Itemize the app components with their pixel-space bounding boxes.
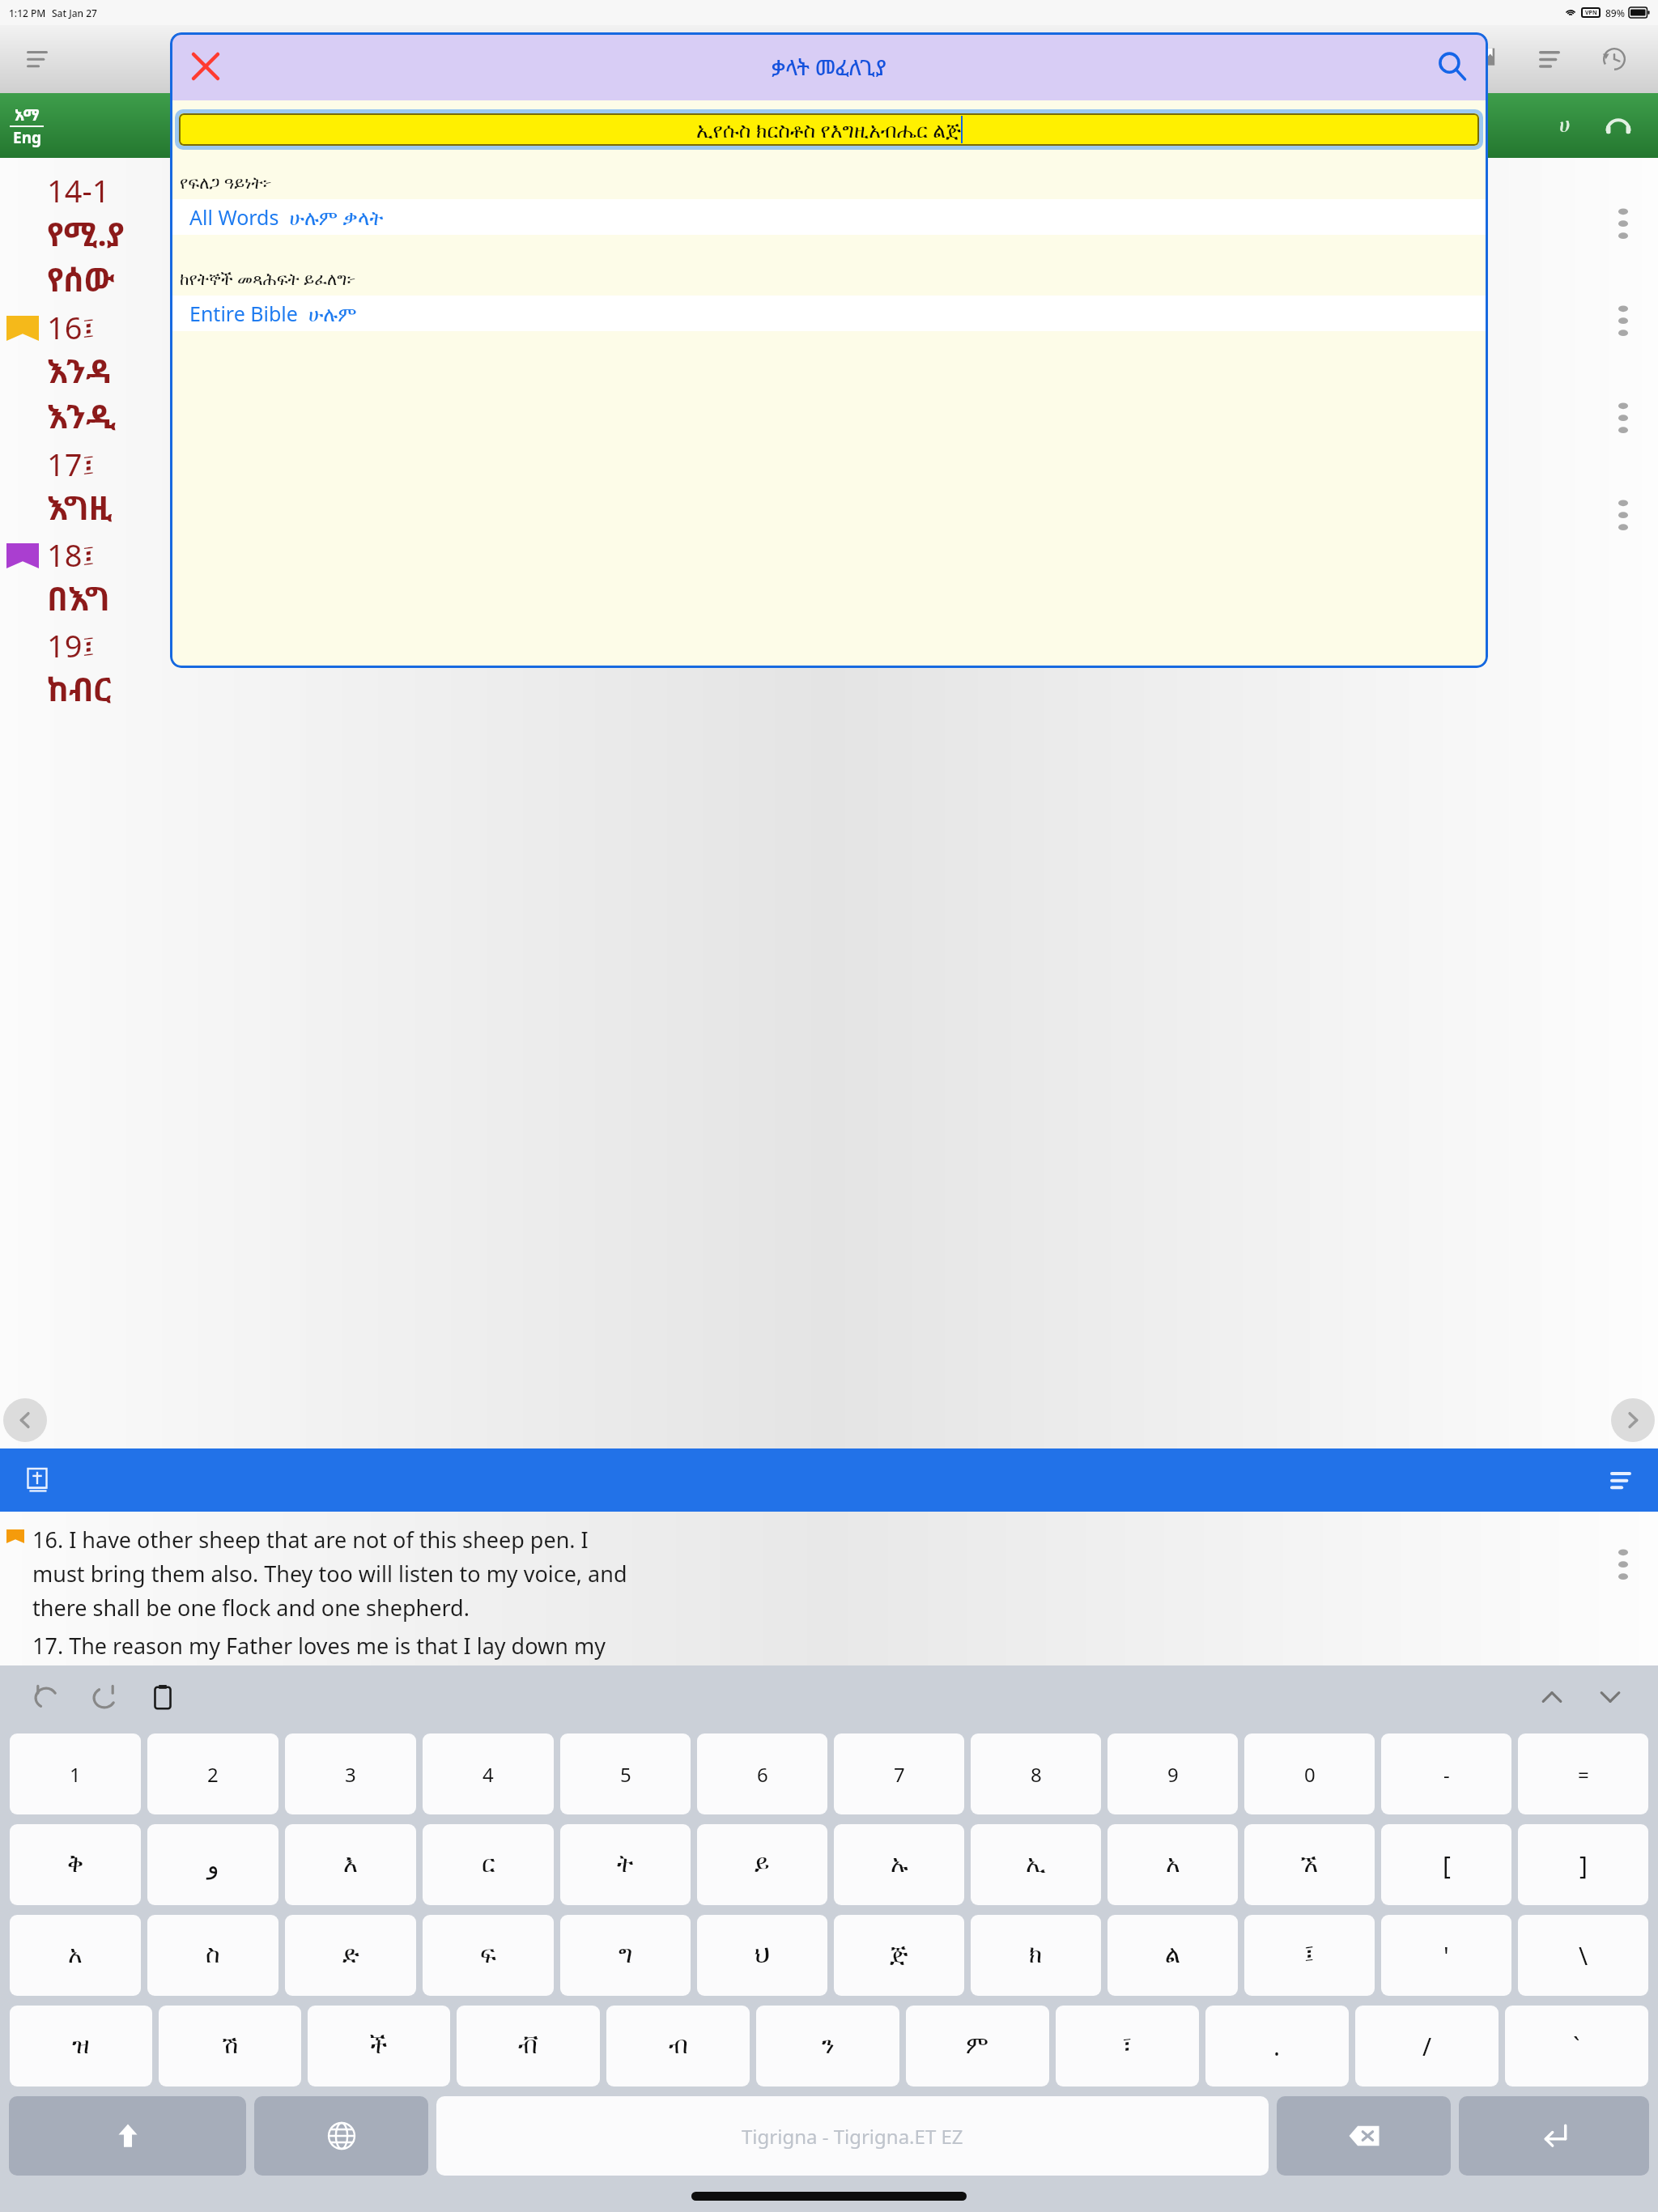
button[interactable]: - <box>1381 1733 1511 1814</box>
button[interactable]: Backspace <box>1277 2096 1451 2176</box>
button[interactable]: 9 <box>1107 1733 1238 1814</box>
staticText: 4 <box>483 1761 494 1788</box>
staticText: 89% <box>1605 6 1625 19</box>
button[interactable]: More options <box>1611 368 1635 466</box>
button[interactable]: ኧ <box>1244 1824 1375 1905</box>
staticText: ን <box>822 2034 835 2058</box>
button[interactable]: Clipboard <box>139 1674 186 1721</box>
button[interactable]: More options <box>1611 174 1635 271</box>
button[interactable]: 7 <box>834 1733 964 1814</box>
staticText: በእግ <box>47 576 110 619</box>
staticText: ፍ <box>480 1943 496 1967</box>
button[interactable]: ቭ <box>457 2006 600 2087</box>
button[interactable]: Next field <box>1587 1674 1634 1721</box>
button[interactable]: Bible <box>18 1461 57 1499</box>
button[interactable]: Language <box>254 2096 428 2176</box>
button[interactable]: 4 <box>423 1733 554 1814</box>
button[interactable]: ፍ <box>423 1915 554 1996</box>
button[interactable]: Menu <box>18 40 57 79</box>
button[interactable]: አማ <box>10 104 44 148</box>
button[interactable]: ድ <box>285 1915 416 1996</box>
staticText: ም <box>966 2034 989 2058</box>
button[interactable]: ን <box>756 2006 899 2087</box>
button[interactable]: 0 <box>1244 1733 1375 1814</box>
button[interactable]: = <box>1518 1733 1648 1814</box>
button[interactable]: Audio U <box>1543 104 1587 147</box>
staticText: ች <box>370 2034 388 2058</box>
button[interactable]: Previous <box>3 1398 47 1442</box>
button[interactable]: History <box>1582 27 1647 91</box>
staticText: አማ <box>15 104 40 125</box>
staticText: 7 <box>894 1761 905 1788</box>
button[interactable]: 1 <box>10 1733 141 1814</box>
button[interactable]: More options <box>1611 466 1635 563</box>
button[interactable]: Menu <box>1601 1461 1640 1499</box>
button[interactable]: አ <box>1107 1824 1238 1905</box>
button[interactable]: ስ <box>147 1915 278 1996</box>
button[interactable]: Search <box>1431 45 1473 87</box>
button[interactable]: ቅ <box>10 1824 141 1905</box>
button[interactable]: 5 <box>560 1733 691 1814</box>
button[interactable]: Notes <box>1517 27 1582 91</box>
button[interactable]: ጅ <box>834 1915 964 1996</box>
button[interactable]: ኢየሱስ ክርስቶስ የእግዚአብሔር ልጅ <box>179 113 1479 146</box>
button[interactable]: እ <box>285 1824 416 1905</box>
staticText: ክ <box>1029 1943 1043 1967</box>
button[interactable]: / <box>1355 2006 1499 2087</box>
button[interactable]: ኡ <box>834 1824 964 1905</box>
button[interactable]: ል <box>1107 1915 1238 1996</box>
button[interactable]: ት <box>560 1824 691 1905</box>
button[interactable]: አ <box>10 1915 141 1996</box>
button[interactable]: Undo <box>23 1674 70 1721</box>
button[interactable]: . <box>1205 2006 1349 2087</box>
button[interactable]: Tigrigna - Tigrigna.ET EZ <box>436 2096 1269 2176</box>
button[interactable]: ፤ <box>1244 1915 1375 1996</box>
staticText: እግዚ <box>47 485 113 529</box>
button[interactable]: ይ <box>697 1824 827 1905</box>
button[interactable]: ፣ <box>1056 2006 1199 2087</box>
staticText: ህ <box>755 1943 770 1967</box>
button[interactable]: ር <box>423 1824 554 1905</box>
button[interactable]: ሽ <box>159 2006 301 2087</box>
button[interactable]: Search <box>1388 27 1452 91</box>
button[interactable]: 6 <box>697 1733 827 1814</box>
button[interactable]: ም <box>906 2006 1049 2087</box>
button[interactable]: Next <box>1611 1398 1655 1442</box>
button[interactable]: More options <box>1611 271 1635 368</box>
button[interactable]: ብ <box>606 2006 750 2087</box>
button[interactable]: ግ <box>560 1915 691 1996</box>
button[interactable]: ክ <box>971 1915 1101 1996</box>
button[interactable]: Bookmarks <box>1452 27 1517 91</box>
button[interactable]: [ <box>1381 1824 1511 1905</box>
button[interactable]: ህ <box>697 1915 827 1996</box>
button[interactable]: Entire Bible ሁሉም <box>170 296 1488 331</box>
staticText: Eng <box>13 127 41 148</box>
button[interactable]: Redo <box>81 1674 128 1721</box>
button[interactable]: ` <box>1505 2006 1648 2087</box>
button[interactable]: ዝ <box>10 2006 152 2087</box>
button[interactable]: \ <box>1518 1915 1648 1996</box>
button[interactable]: 3 <box>285 1733 416 1814</box>
button[interactable]: ﻭ <box>147 1824 278 1905</box>
button[interactable]: Enter <box>1459 2096 1649 2176</box>
staticText: / <box>1422 2030 1432 2063</box>
button[interactable]: ኢ <box>971 1824 1101 1905</box>
staticText: ዝ <box>72 2034 90 2058</box>
button[interactable]: ' <box>1381 1915 1511 1996</box>
button[interactable]: 2 <box>147 1733 278 1814</box>
staticText: ﻭ <box>207 1851 219 1879</box>
button[interactable]: More options <box>1611 1539 1635 1588</box>
staticText: - <box>1443 1761 1450 1788</box>
button[interactable]: Close <box>185 45 227 87</box>
staticText: ] <box>1579 1848 1588 1882</box>
button[interactable]: Headphones <box>1596 104 1640 147</box>
button[interactable]: ች <box>308 2006 450 2087</box>
button[interactable]: 8 <box>971 1733 1101 1814</box>
button[interactable]: ] <box>1518 1824 1648 1905</box>
button[interactable]: Shift <box>9 2096 246 2176</box>
button[interactable]: Bible <box>1323 27 1388 91</box>
staticText: . <box>1273 2030 1281 2063</box>
staticText: 16፤ <box>47 306 96 348</box>
button[interactable]: All Words ሁሉም ቃላት <box>170 199 1488 235</box>
button[interactable]: Previous field <box>1528 1674 1575 1721</box>
